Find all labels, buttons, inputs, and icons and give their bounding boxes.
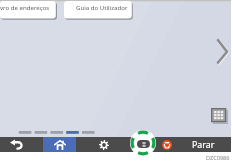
staticText: DZC0986 [206,154,230,162]
button[interactable]: Applications [211,108,228,124]
button[interactable]: Settings [76,137,131,152]
button[interactable]: Next page [214,36,231,67]
staticText: Guia do Utilizador [76,3,128,11]
button[interactable]: Parar [158,137,231,152]
staticText: Parar [192,139,215,151]
button[interactable]: Back [0,137,43,152]
button[interactable]: Guia do Utilizador [64,1,133,20]
button[interactable]: Job status [137,140,150,148]
button[interactable]: Home [43,137,76,152]
staticText: vro de endereços [0,3,50,11]
button[interactable]: vro de endereços [0,1,57,20]
